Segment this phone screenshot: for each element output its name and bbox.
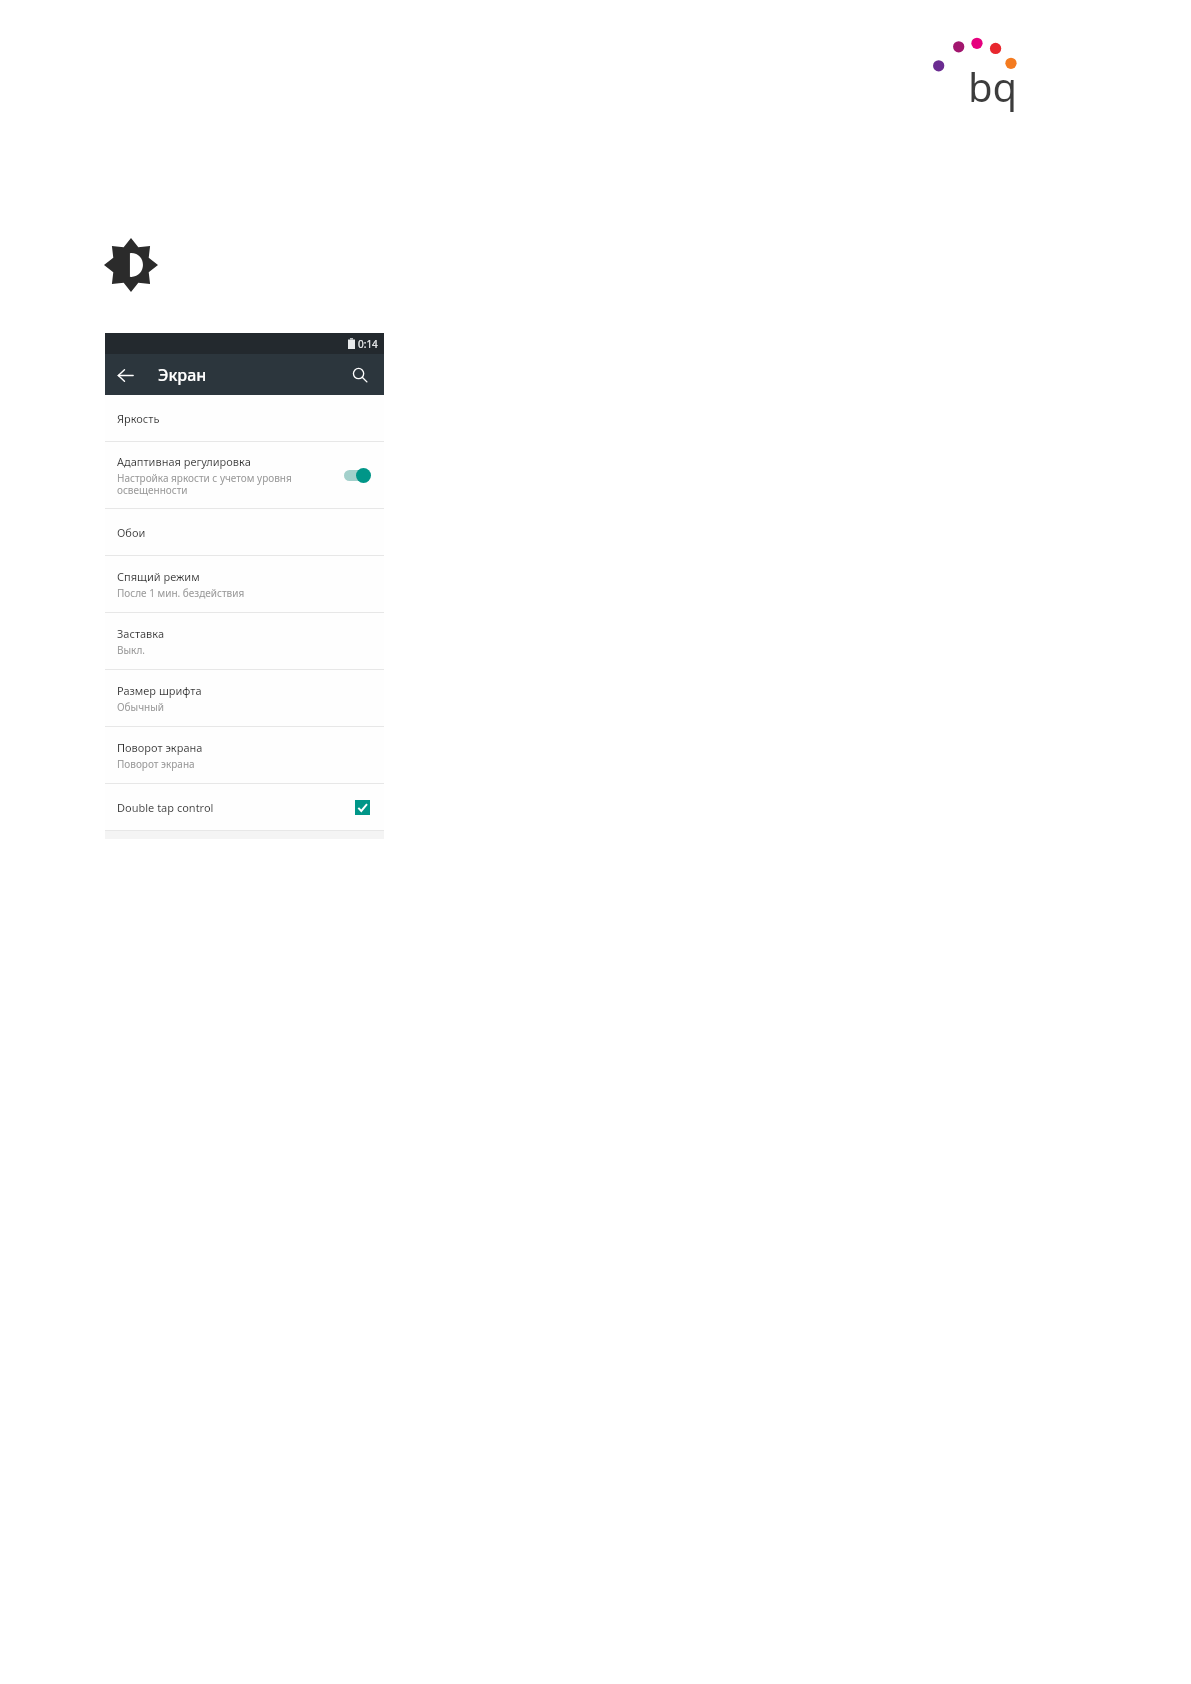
button[interactable]: Спящий режим <box>105 556 384 612</box>
staticText: Экран <box>158 364 207 386</box>
button[interactable]: Заставка <box>105 613 384 669</box>
staticText: Размер шрифта <box>117 683 202 698</box>
staticText: Обычный <box>117 700 164 714</box>
staticText: Заставка <box>117 626 165 641</box>
button[interactable]: Яркость <box>105 395 384 441</box>
staticText: Настройка яркости с учетом уровня освеще… <box>117 471 292 497</box>
button[interactable]: Размер шрифта <box>105 670 384 726</box>
other: Brightness <box>104 238 158 292</box>
staticText: После 1 мин. бездействия <box>117 586 245 600</box>
staticText: Обои <box>117 525 146 540</box>
staticText: Поворот экрана <box>117 740 203 755</box>
staticText: Спящий режим <box>117 569 200 584</box>
staticText: 0:14 <box>358 337 378 351</box>
button[interactable]: Адаптивная регулировка <box>105 442 384 508</box>
button[interactable]: Back <box>105 355 145 395</box>
staticText: Поворот экрана <box>117 757 195 771</box>
staticText: bq <box>968 59 1018 113</box>
staticText: Выкл. <box>117 643 145 657</box>
staticText: Яркость <box>117 411 160 426</box>
button[interactable]: Обои <box>105 509 384 555</box>
button[interactable]: Search <box>340 355 380 395</box>
staticText: Адаптивная регулировка <box>117 454 251 469</box>
staticText: Double tap control <box>117 800 355 815</box>
button[interactable]: Поворот экрана <box>105 727 384 783</box>
button[interactable]: Double tap control <box>105 784 384 830</box>
